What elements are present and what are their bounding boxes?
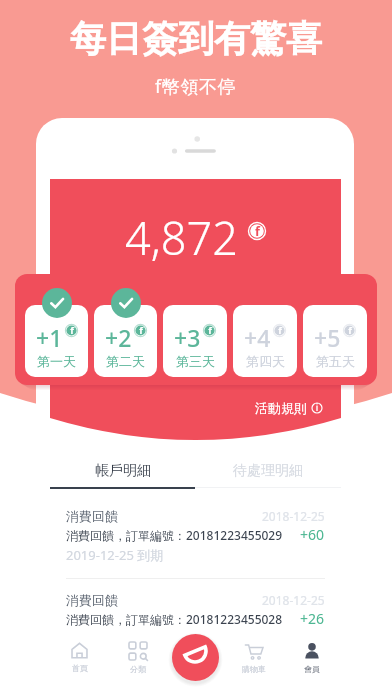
staticText: f	[348, 324, 352, 337]
button[interactable]: 消費回饋	[50, 579, 341, 642]
staticText: 2018-12-25	[262, 508, 325, 524]
button[interactable]: 購物車	[225, 634, 283, 696]
button[interactable]: 待處理明細	[195, 455, 341, 487]
button[interactable]: +2	[94, 274, 157, 385]
staticText: f幣領不停	[155, 74, 237, 99]
staticText: 第二天	[106, 353, 145, 369]
staticText: +2	[105, 322, 132, 353]
staticText: 活動規則	[255, 400, 307, 416]
staticText: +26	[300, 609, 325, 628]
staticText: 會員	[304, 664, 320, 674]
staticText: +3	[174, 322, 201, 353]
staticText: 2019-12-25 到期	[66, 546, 164, 564]
staticText: f	[70, 324, 74, 337]
staticText: f	[139, 324, 143, 337]
staticText: 2018-12-25	[262, 592, 325, 608]
staticText: 4,872	[125, 207, 238, 268]
staticText: 消費回饋，訂單編號：20181223455028	[66, 611, 283, 627]
staticText: 消費回饋	[66, 592, 118, 608]
button[interactable]: 首頁	[50, 634, 109, 696]
button[interactable]: +1	[25, 274, 88, 385]
staticText: 待處理明細	[233, 462, 303, 480]
staticText: 第一天	[37, 353, 76, 369]
staticText: f	[255, 223, 260, 240]
staticText: 第三天	[176, 353, 215, 369]
staticText: f	[278, 324, 282, 337]
button[interactable]: 活動規則	[253, 398, 325, 418]
staticText: +5	[314, 322, 341, 353]
staticText: 每日簽到有驚喜	[70, 16, 322, 61]
staticText: 第四天	[246, 353, 285, 369]
staticText: 首頁	[72, 663, 88, 673]
button[interactable]: 帳戶明細	[50, 455, 195, 487]
staticText: 購物車	[242, 664, 266, 674]
button[interactable]: 會員	[283, 634, 341, 696]
button[interactable]: +5	[303, 274, 367, 385]
staticText: 分類	[130, 664, 146, 674]
staticText: f	[208, 324, 212, 337]
button[interactable]: friDay	[172, 634, 219, 681]
staticText: 消費回饋	[66, 508, 118, 524]
staticText: 第五天	[316, 353, 355, 369]
staticText: +60	[300, 525, 325, 544]
staticText: 帳戶明細	[95, 462, 151, 480]
staticText: 消費回饋，訂單編號：20181223455029	[66, 527, 283, 543]
button[interactable]: +3	[163, 274, 227, 385]
button[interactable]: +4	[233, 274, 297, 385]
staticText: +1	[36, 322, 63, 353]
button[interactable]: 分類	[109, 634, 167, 696]
staticText: +4	[244, 322, 271, 353]
button[interactable]: 消費回饋	[50, 491, 341, 578]
